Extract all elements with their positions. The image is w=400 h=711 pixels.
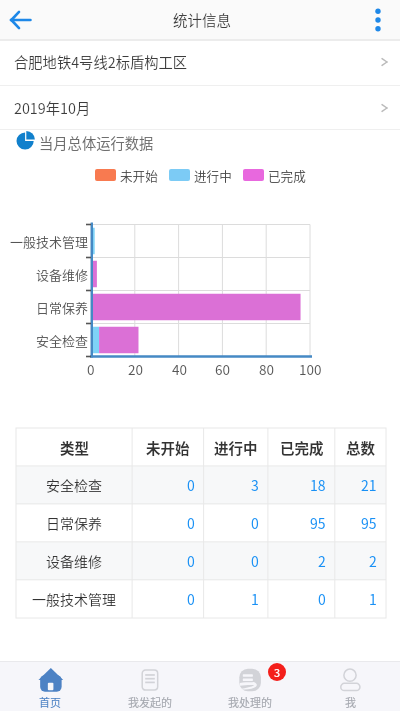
staticText: 2019年10月 (14, 97, 91, 118)
staticText: 100 (299, 359, 322, 379)
staticText: 我发起的 (128, 694, 172, 710)
staticText: 3 (251, 475, 259, 495)
staticText: 进行中 (194, 166, 232, 184)
staticText: 安全检查 (36, 331, 89, 350)
staticText: 一般技术管理 (32, 589, 116, 609)
staticText: 0 (251, 513, 259, 533)
staticText: 1 (251, 589, 259, 609)
staticText: 设备维修 (36, 265, 89, 284)
staticText: 2 (318, 551, 326, 571)
button[interactable]: 2019年10月 (0, 86, 400, 129)
staticText: 已完成 (268, 166, 306, 184)
staticText: 进行中 (214, 437, 258, 458)
staticText: 当月总体运行数据 (39, 132, 154, 153)
staticText: 3 (274, 664, 281, 680)
staticText: 18 (310, 475, 326, 495)
staticText: 1 (369, 589, 377, 609)
staticText: 一般技术管理 (10, 232, 89, 251)
staticText: 0 (187, 513, 195, 533)
staticText: 0 (187, 551, 195, 571)
button[interactable]: 3 (200, 661, 300, 711)
staticText: 已完成 (280, 437, 324, 458)
staticText: 日常保养 (46, 513, 102, 533)
staticText: 21 (361, 475, 377, 495)
staticText: 首页 (39, 694, 61, 710)
button[interactable]: 我发起的 (100, 661, 200, 711)
staticText: 总数 (346, 437, 375, 458)
staticText: 0 (318, 589, 326, 609)
staticText: 80 (259, 359, 274, 379)
staticText: 未开始 (146, 437, 190, 458)
staticText: 0 (87, 359, 95, 379)
staticText: 日常保养 (36, 298, 89, 317)
button[interactable]: Back (4, 3, 38, 37)
staticText: 未开始 (120, 166, 158, 184)
staticText: 0 (251, 551, 259, 571)
staticText: 我处理的 (228, 694, 272, 710)
staticText: 0 (187, 475, 195, 495)
staticText: 20 (128, 359, 143, 379)
staticText: 我 (345, 694, 356, 710)
staticText: 安全检查 (46, 475, 102, 495)
staticText: 95 (310, 513, 326, 533)
staticText: 40 (172, 359, 187, 379)
staticText: 95 (361, 513, 377, 533)
button[interactable]: 我 (300, 661, 400, 711)
staticText: 60 (215, 359, 230, 379)
staticText: 统计信息 (173, 9, 231, 30)
staticText: 2 (369, 551, 377, 571)
button[interactable]: 首页 (0, 661, 100, 711)
button[interactable]: More options (362, 4, 394, 36)
staticText: 合肥地铁4号线2标盾构工区 (14, 51, 188, 72)
button[interactable]: 合肥地铁4号线2标盾构工区 (0, 40, 400, 83)
staticText: 设备维修 (46, 551, 102, 571)
staticText: 类型 (60, 437, 89, 458)
staticText: 0 (187, 589, 195, 609)
